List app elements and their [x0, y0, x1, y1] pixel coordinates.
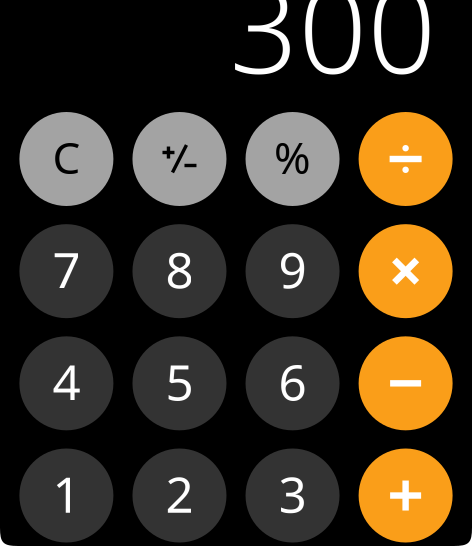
staticText: 6 — [278, 349, 306, 414]
button[interactable]: Add — [359, 448, 453, 542]
button[interactable]: 4 — [19, 336, 113, 430]
staticText: 9 — [278, 236, 306, 302]
staticText: % — [274, 128, 311, 186]
button[interactable]: Multiply — [359, 224, 453, 318]
staticText: 8 — [165, 236, 193, 302]
button[interactable]: 8 — [132, 224, 226, 318]
staticText: 4 — [52, 349, 80, 414]
staticText: 7 — [52, 236, 80, 302]
staticText: 2 — [165, 461, 193, 526]
button[interactable]: Toggle sign — [132, 112, 226, 206]
button[interactable]: % — [245, 112, 339, 206]
staticText: 5 — [165, 349, 193, 414]
button[interactable]: 2 — [132, 448, 226, 542]
button[interactable]: 3 — [245, 448, 339, 542]
button[interactable]: 5 — [132, 336, 226, 430]
button[interactable]: 6 — [245, 336, 339, 430]
staticText: 3 — [278, 461, 306, 526]
staticText: 300 — [229, 0, 436, 107]
staticText: 1 — [52, 461, 80, 526]
button[interactable]: 1 — [19, 448, 113, 542]
button[interactable]: C — [19, 112, 113, 206]
button[interactable]: 9 — [245, 224, 339, 318]
button[interactable]: Subtract — [359, 336, 453, 430]
staticText: C — [52, 128, 80, 186]
button[interactable]: 7 — [19, 224, 113, 318]
button[interactable]: Divide — [359, 112, 453, 206]
